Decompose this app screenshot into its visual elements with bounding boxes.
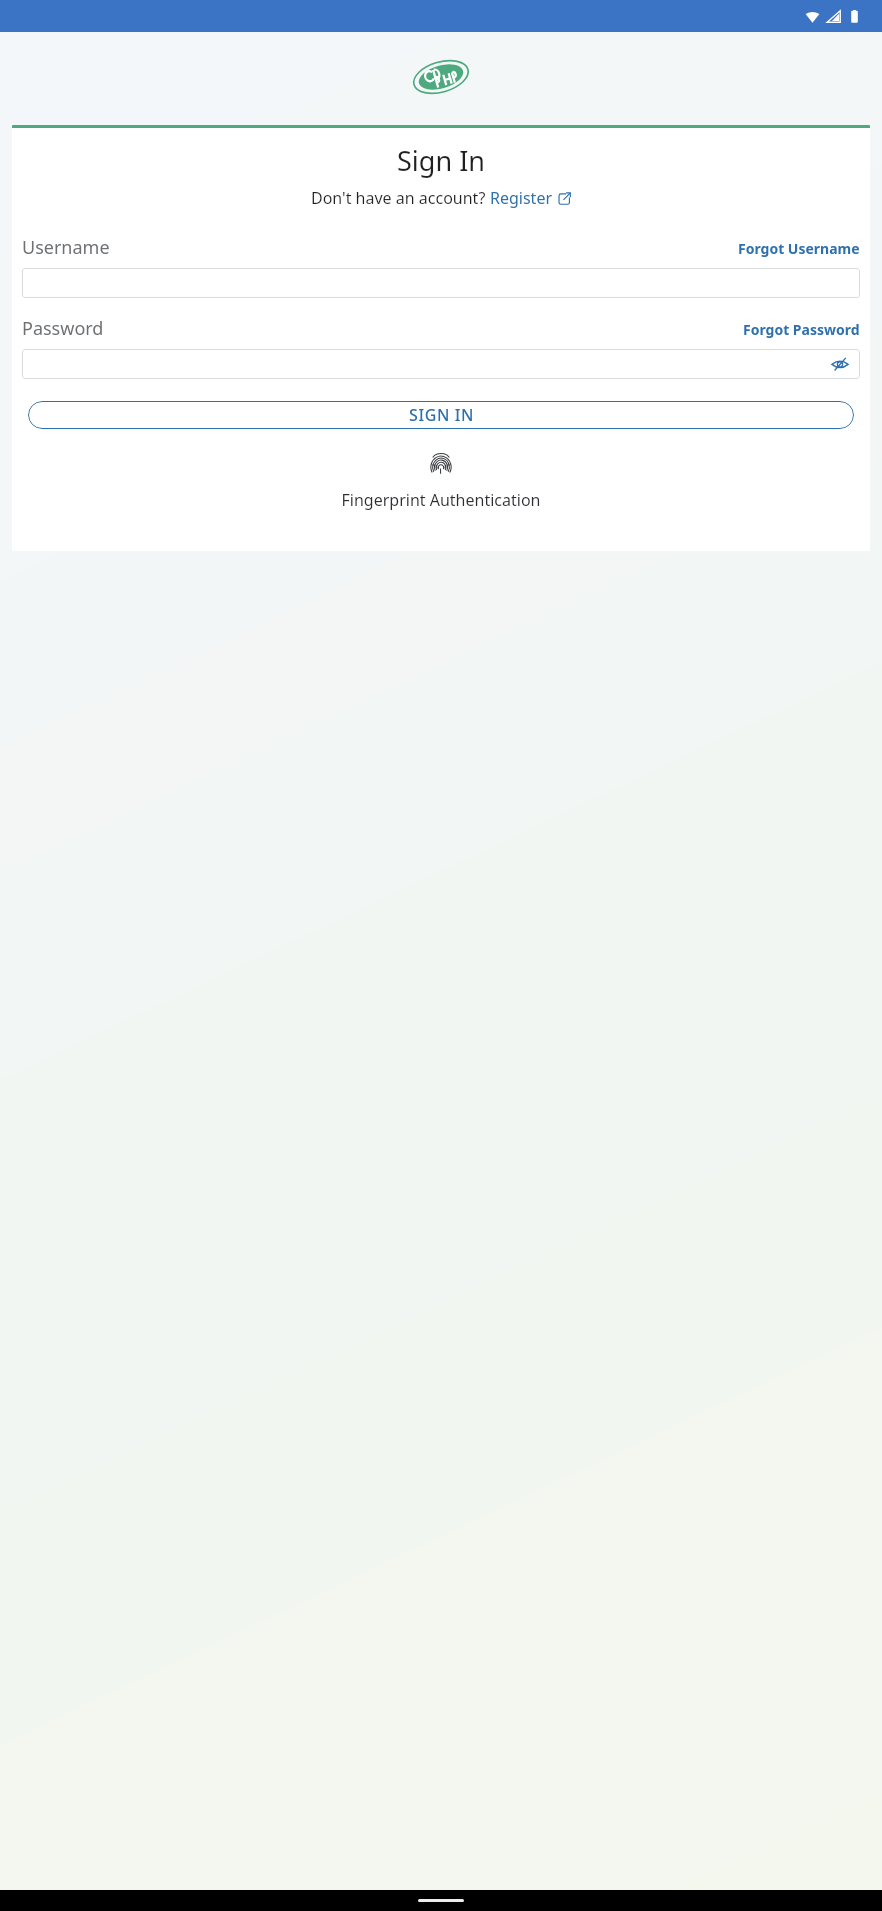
button[interactable]: Forgot Username — [738, 237, 860, 260]
staticText: SIGN IN — [409, 404, 474, 426]
staticText: Username — [22, 235, 110, 260]
staticText: Password — [22, 316, 104, 341]
button[interactable]: Register — [490, 187, 571, 209]
staticText: Sign In — [22, 142, 860, 179]
staticText: Forgot Password — [743, 320, 860, 339]
button[interactable]: Forgot Password — [743, 318, 860, 341]
button[interactable]: Show password — [830, 354, 850, 374]
button[interactable]: SIGN IN — [28, 401, 854, 429]
staticText: Register — [490, 187, 553, 209]
button[interactable]: Show password — [22, 349, 860, 379]
other: Fingerprint Authentication — [430, 455, 452, 477]
button[interactable]: Fingerprint Authentication — [22, 455, 860, 511]
staticText: Fingerprint Authentication — [22, 489, 860, 511]
button[interactable] — [22, 268, 860, 298]
staticText: Forgot Username — [738, 239, 860, 258]
staticText: Don't have an account? — [311, 187, 490, 209]
